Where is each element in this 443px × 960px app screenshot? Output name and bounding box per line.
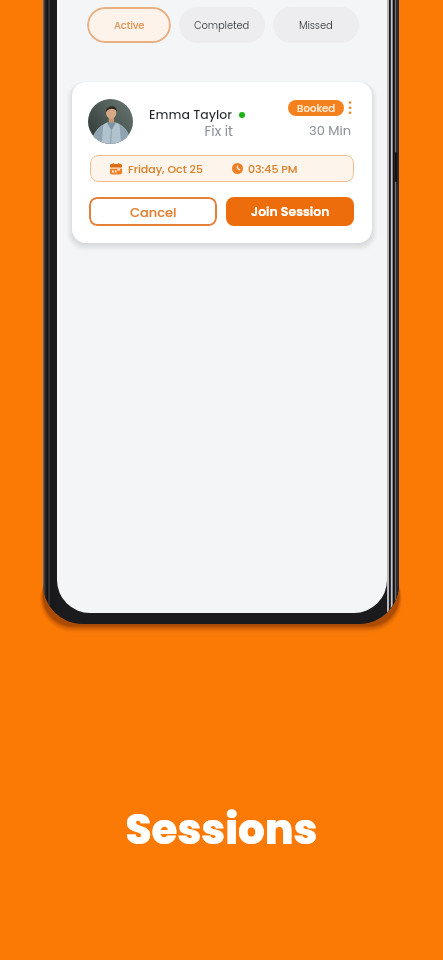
staticText: Join Session xyxy=(251,203,330,220)
staticText: Sessions xyxy=(0,800,443,859)
staticText: Booked xyxy=(297,101,336,115)
staticText: Missed xyxy=(299,18,333,32)
button[interactable]: Join Session xyxy=(226,197,354,226)
staticText: Active xyxy=(114,18,145,32)
staticText: Friday, Oct 25 xyxy=(128,161,203,176)
button[interactable]: Active xyxy=(87,7,171,43)
staticText: 30 Min xyxy=(272,121,351,139)
button[interactable]: Cancel xyxy=(89,197,217,226)
button[interactable]: Missed xyxy=(273,7,359,43)
staticText: Completed xyxy=(194,18,250,32)
staticText: Cancel xyxy=(130,203,177,221)
staticText: Fix it xyxy=(153,122,233,141)
button[interactable]: Completed xyxy=(179,7,265,43)
staticText: Emma Taylor xyxy=(149,106,233,123)
button[interactable]: More options xyxy=(344,95,356,117)
button[interactable]: Booked xyxy=(288,100,344,116)
staticText: 03:45 PM xyxy=(248,161,298,176)
